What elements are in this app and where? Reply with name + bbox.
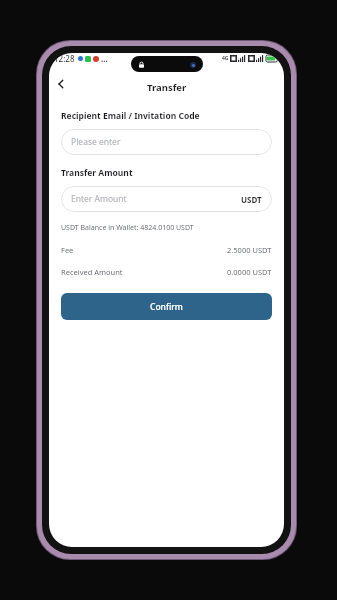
staticText: ... (101, 53, 108, 64)
staticText: Transfer Amount (61, 167, 133, 179)
staticText: Confirm (150, 301, 183, 313)
button[interactable]: Please enter (61, 129, 272, 155)
button[interactable]: Confirm (61, 293, 272, 320)
staticText: Transfer (147, 81, 187, 94)
staticText: 2.5000 USDT (227, 245, 272, 255)
staticText: 12:28 (54, 53, 75, 64)
staticText: Please enter (71, 136, 121, 148)
button[interactable]: Enter Amount (61, 186, 272, 212)
staticText: 0.0000 USDT (227, 267, 272, 277)
staticText: USDT Balance in Wallet: 4824.0100 USDT (61, 223, 194, 233)
staticText: Recipient Email / Invitation Code (61, 110, 200, 122)
staticText: USDT (241, 194, 262, 205)
staticText: Received Amount (61, 267, 123, 277)
staticText: Enter Amount (71, 193, 127, 205)
button[interactable]: Back (49, 72, 73, 96)
staticText: 4G (222, 55, 229, 62)
staticText: Fee (61, 245, 74, 255)
